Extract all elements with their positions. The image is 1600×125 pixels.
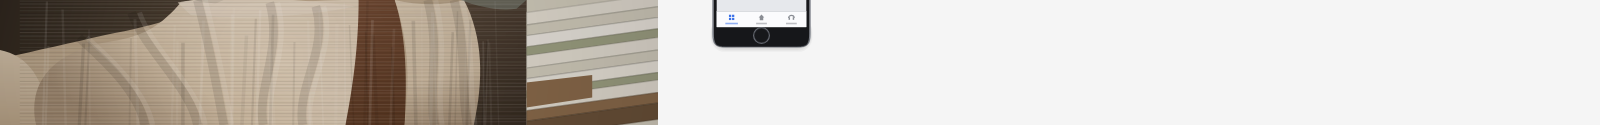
button[interactable]: App preview on phone: [705, 0, 820, 58]
button[interactable]: Cosy knit blanket photo: [0, 0, 658, 125]
